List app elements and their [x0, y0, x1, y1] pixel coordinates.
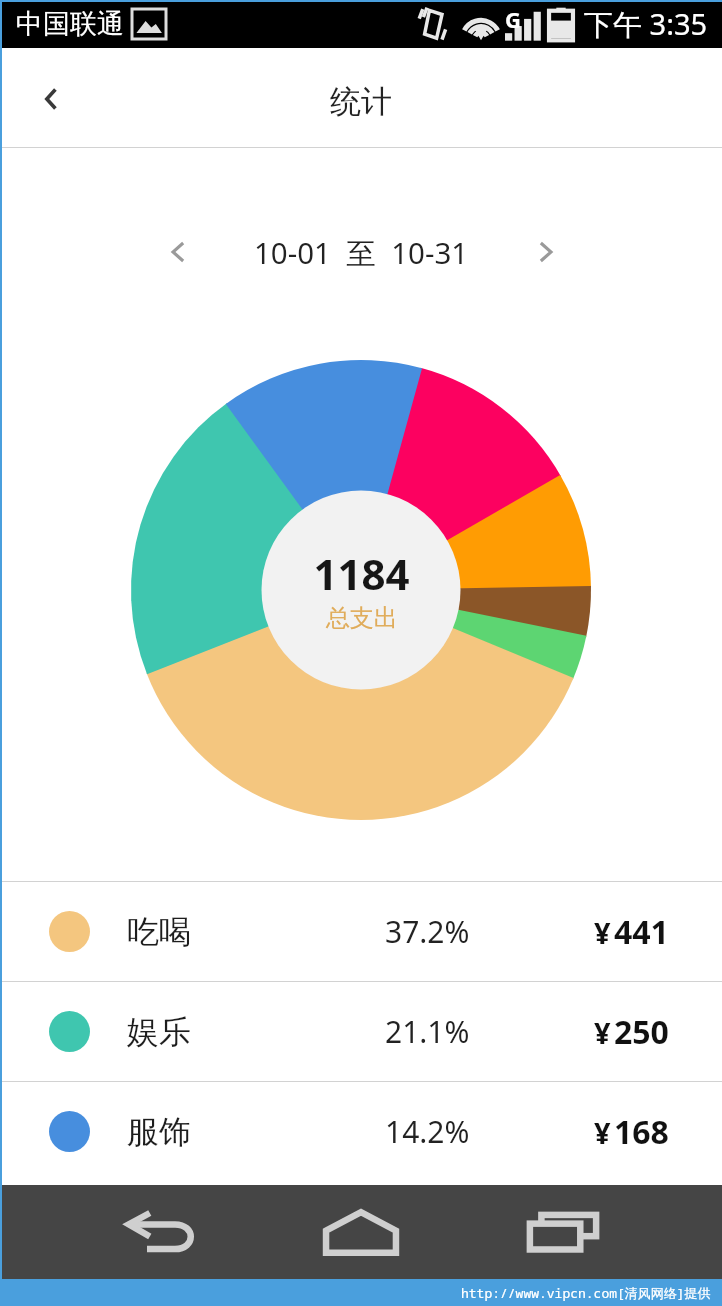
staticText: 14.2%	[385, 1111, 470, 1152]
button[interactable]: 吃喝	[0, 882, 722, 981]
button[interactable]: 娱乐	[0, 982, 722, 1081]
staticText: 服饰	[127, 1112, 191, 1152]
staticText: ¥	[594, 1113, 611, 1152]
button[interactable]: Recent apps	[523, 1185, 603, 1279]
staticText: 37.2%	[385, 911, 470, 952]
button[interactable]: Next month	[514, 220, 578, 284]
staticText: 下午 3:35	[584, 4, 708, 44]
staticText: 娱乐	[127, 1012, 191, 1052]
button[interactable]: 服饰	[0, 1082, 722, 1181]
staticText: 441	[614, 910, 669, 954]
button[interactable]: Home	[318, 1185, 404, 1279]
staticText: G	[505, 4, 521, 34]
button[interactable]: Back	[0, 48, 101, 147]
staticText: 250	[614, 1010, 669, 1054]
staticText: 1184	[313, 545, 410, 602]
staticText: ¥	[594, 913, 611, 952]
staticText: 吃喝	[127, 912, 191, 952]
staticText: 统计	[330, 82, 392, 121]
staticText: 21.1%	[385, 1011, 470, 1052]
staticText: ¥	[594, 1013, 611, 1052]
staticText: 168	[614, 1110, 669, 1154]
button[interactable]: Back	[121, 1185, 201, 1279]
staticText: http://www.vipcn.com[清风网络]提供	[461, 1284, 711, 1302]
staticText: 中国联通	[16, 7, 124, 41]
button[interactable]: Previous month	[145, 220, 209, 284]
staticText: 总支出	[326, 603, 398, 633]
staticText: 10-01 至 10-31	[254, 232, 469, 272]
